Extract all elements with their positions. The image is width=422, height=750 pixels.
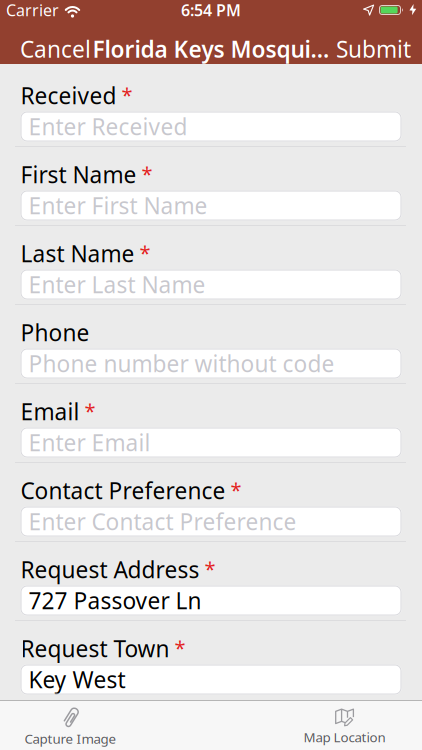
staticText: Request Town	[20, 633, 169, 663]
staticText: Florida Keys Mosqui…	[92, 34, 329, 64]
staticText: Enter Email	[28, 427, 150, 457]
staticText: 727 Passover Ln	[28, 585, 201, 615]
staticText: Contact Preference	[20, 475, 225, 505]
staticText: Request Address	[20, 554, 199, 584]
staticText: *	[84, 397, 95, 424]
staticText: First Name	[20, 159, 136, 189]
staticText: 6:54 PM	[181, 0, 241, 21]
staticText: *	[174, 634, 185, 661]
staticText: Key West	[28, 664, 125, 694]
staticText: Submit	[336, 34, 411, 64]
button[interactable]: Enter First Name	[20, 190, 401, 220]
button[interactable]: Enter Email	[20, 427, 401, 457]
staticText: *	[121, 81, 132, 108]
staticText: Carrier	[6, 0, 59, 21]
staticText: Email	[20, 396, 79, 426]
button[interactable]: 727 Passover Ln	[20, 585, 401, 615]
button[interactable]: Enter Last Name	[20, 269, 401, 299]
staticText: *	[139, 239, 150, 266]
button[interactable]: Cancel	[20, 34, 91, 64]
button[interactable]: Phone number without code	[20, 348, 401, 378]
staticText: *	[141, 160, 152, 187]
staticText: Enter Received	[28, 111, 187, 141]
staticText: *	[230, 476, 241, 503]
button[interactable]: Enter Received	[20, 111, 401, 141]
staticText: *	[204, 555, 215, 582]
staticText: Enter First Name	[28, 190, 207, 220]
staticText: Map Location	[303, 728, 385, 746]
staticText: Received	[20, 80, 116, 110]
button[interactable]: Capture Image	[0, 707, 141, 747]
button[interactable]: Key West	[20, 664, 401, 694]
button[interactable]: Enter Contact Preference	[20, 506, 401, 536]
button[interactable]: Map Location	[274, 708, 415, 746]
staticText: Phone number without code	[28, 348, 334, 378]
staticText: Capture Image	[24, 730, 116, 747]
staticText: Enter Last Name	[28, 269, 205, 299]
staticText: Phone	[20, 317, 89, 347]
staticText: Cancel	[20, 34, 91, 64]
staticText: Last Name	[20, 238, 134, 268]
button[interactable]: Submit	[336, 34, 411, 64]
staticText: Enter Contact Preference	[28, 506, 296, 536]
